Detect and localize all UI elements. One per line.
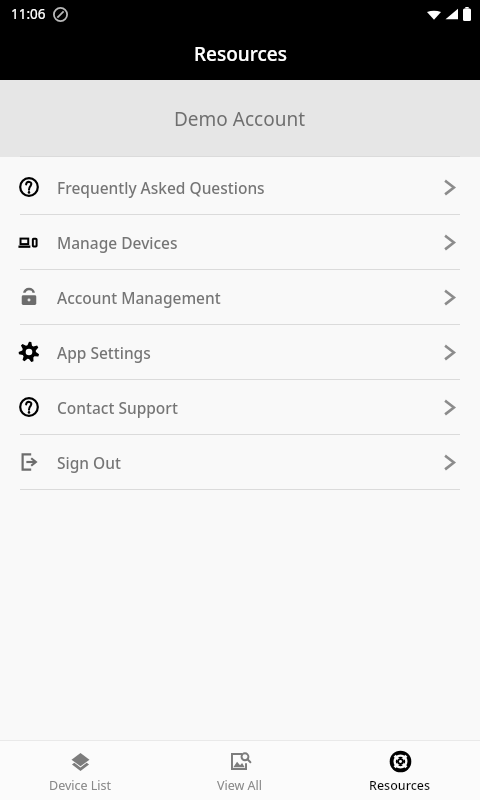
staticText: Demo Account: [174, 106, 306, 132]
staticText: Resources: [194, 41, 287, 67]
staticText: Account Management: [57, 287, 221, 308]
staticText: Device List: [49, 777, 112, 794]
button[interactable]: App Settings: [0, 325, 480, 379]
button[interactable]: Sign Out: [0, 435, 480, 489]
staticText: Sign Out: [57, 452, 121, 473]
staticText: App Settings: [57, 342, 151, 363]
button[interactable]: Contact Support: [0, 380, 480, 434]
button[interactable]: Resources: [320, 741, 480, 800]
button[interactable]: Account Management: [0, 270, 480, 324]
staticText: Contact Support: [57, 397, 178, 418]
button[interactable]: Manage Devices: [0, 215, 480, 269]
staticText: Manage Devices: [57, 232, 178, 253]
button[interactable]: Device List: [0, 741, 160, 800]
button[interactable]: Frequently Asked Questions: [0, 160, 480, 214]
staticText: 11:06: [11, 5, 46, 23]
staticText: View All: [217, 777, 263, 794]
staticText: Frequently Asked Questions: [57, 177, 265, 198]
button[interactable]: View All: [160, 741, 320, 800]
staticText: Resources: [369, 777, 431, 794]
